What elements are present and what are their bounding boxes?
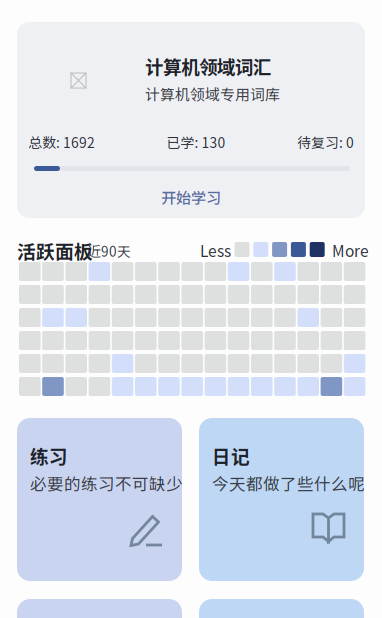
staticText: 计算机领域专用词库	[145, 83, 280, 105]
staticText: 总数: 1692	[28, 132, 95, 152]
button[interactable]: 练习	[17, 418, 182, 581]
staticText: 计算机领域词汇	[145, 53, 271, 80]
staticText: 开始学习	[161, 186, 221, 208]
staticText: More	[332, 239, 369, 261]
staticText: 必要的练习不可缺少	[30, 471, 183, 495]
button[interactable]: 开始学习	[17, 178, 365, 216]
staticText: 已学: 130	[166, 132, 225, 152]
staticText: 练习	[30, 442, 68, 469]
staticText: Less	[200, 239, 231, 261]
staticText: 活跃面板	[17, 237, 93, 264]
staticText: 待复习: 0	[297, 132, 354, 152]
button[interactable]: 日记	[199, 418, 364, 581]
staticText: 近90天	[87, 241, 131, 261]
image	[70, 72, 86, 88]
staticText: 今天都做了些什么呢	[212, 471, 365, 495]
staticText: 日记	[212, 442, 250, 469]
